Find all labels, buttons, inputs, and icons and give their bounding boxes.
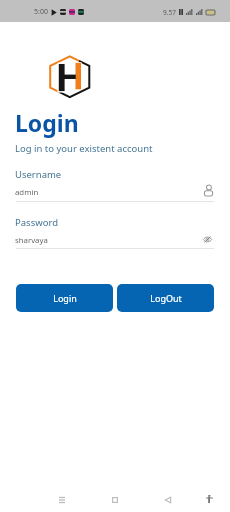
staticText: Username <box>15 168 62 181</box>
staticText: Login <box>15 107 79 138</box>
staticText: 9.57 <box>163 8 176 17</box>
staticText: sharvaya <box>15 235 48 246</box>
staticText: admin <box>15 187 39 198</box>
staticText: 5:00 <box>34 7 48 17</box>
button[interactable]: Home <box>107 492 123 508</box>
staticText: LogOut <box>150 292 182 304</box>
button[interactable]: Recents <box>54 492 70 508</box>
button[interactable]: Login <box>16 284 113 312</box>
staticText: Log in to your existent account <box>15 142 153 155</box>
staticText: Password <box>15 216 58 229</box>
button[interactable]: LogOut <box>117 284 214 312</box>
button[interactable]: Back <box>160 492 176 508</box>
button[interactable]: Accessibility <box>201 491 217 507</box>
staticText: Login <box>53 292 77 304</box>
